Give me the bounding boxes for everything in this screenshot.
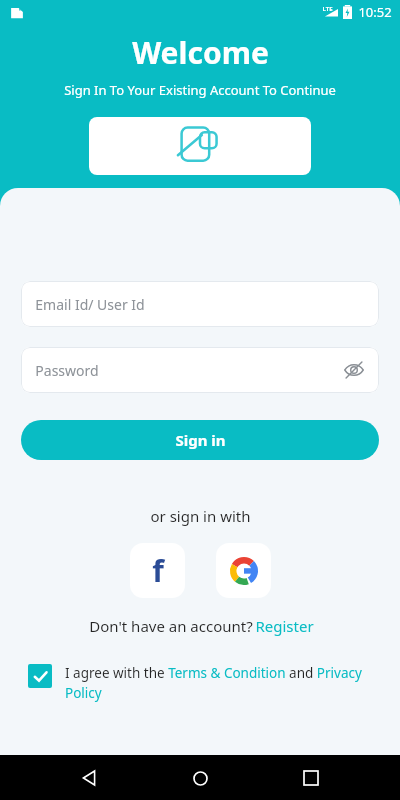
button[interactable]: App logo: [89, 117, 311, 175]
staticText: f: [152, 550, 164, 591]
staticText: Email Id/ User Id: [35, 295, 145, 314]
button[interactable]: Agree to terms checkbox: [28, 664, 52, 688]
button[interactable]: I agree with the Terms & Condition and P…: [65, 664, 380, 702]
button[interactable]: Sign in: [21, 420, 379, 460]
button[interactable]: Back: [67, 756, 111, 800]
staticText: 10:52: [358, 3, 392, 21]
staticText: Don't have an account?: [87, 616, 255, 636]
button[interactable]: Don't have an account?: [87, 616, 314, 636]
staticText: Welcome: [132, 32, 269, 73]
button[interactable]: Sign in with Facebook: [130, 543, 185, 598]
staticText: Sign In To Your Existing Account To Cont…: [64, 81, 336, 99]
staticText: LTE: [322, 5, 333, 13]
staticText: Register: [255, 616, 314, 636]
staticText: Password: [35, 361, 99, 380]
button[interactable]: Recent apps: [289, 756, 333, 800]
button[interactable]: Home: [178, 756, 222, 800]
button[interactable]: Sign in with Google: [216, 543, 271, 598]
staticText: Sign in: [175, 430, 226, 450]
button[interactable]: Password: [21, 347, 379, 393]
button[interactable]: Show password: [341, 357, 367, 383]
button[interactable]: Email Id/ User Id: [21, 281, 379, 327]
staticText: or sign in with: [150, 506, 251, 526]
